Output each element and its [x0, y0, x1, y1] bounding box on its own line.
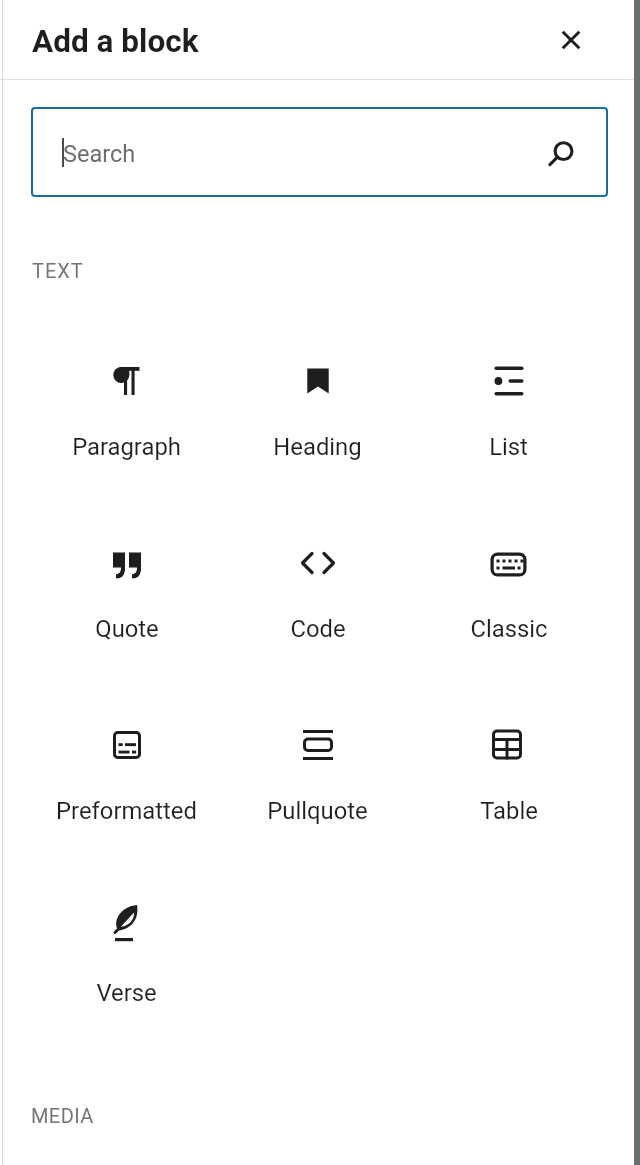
staticText: List	[489, 433, 528, 461]
staticText: Code	[290, 615, 346, 643]
staticText: Quote	[95, 615, 159, 643]
button[interactable]: Pullquote	[222, 716, 413, 876]
button[interactable]: Classic	[413, 534, 604, 694]
staticText: MEDIA	[31, 1104, 94, 1127]
staticText: Classic	[470, 615, 548, 643]
button[interactable]: Code	[222, 534, 413, 694]
button[interactable]: Verse	[31, 898, 222, 1058]
button[interactable]: Paragraph	[31, 352, 222, 512]
staticText: Table	[480, 797, 538, 825]
staticText: TEXT	[32, 259, 84, 282]
staticText: Verse	[96, 979, 157, 1007]
staticText: Search	[63, 140, 136, 168]
staticText: Paragraph	[72, 433, 181, 461]
button[interactable]: Close	[547, 16, 595, 64]
button[interactable]: Table	[413, 716, 604, 876]
staticText: Pullquote	[267, 797, 368, 825]
button[interactable]: Quote	[31, 534, 222, 694]
staticText: Preformatted	[56, 797, 197, 825]
button[interactable]: List	[413, 352, 604, 512]
staticText: Add a block	[32, 23, 199, 60]
button[interactable]: Heading	[222, 352, 413, 512]
staticText: Heading	[273, 433, 362, 461]
button[interactable]: Search	[31, 107, 608, 197]
button[interactable]: Preformatted	[31, 716, 222, 876]
